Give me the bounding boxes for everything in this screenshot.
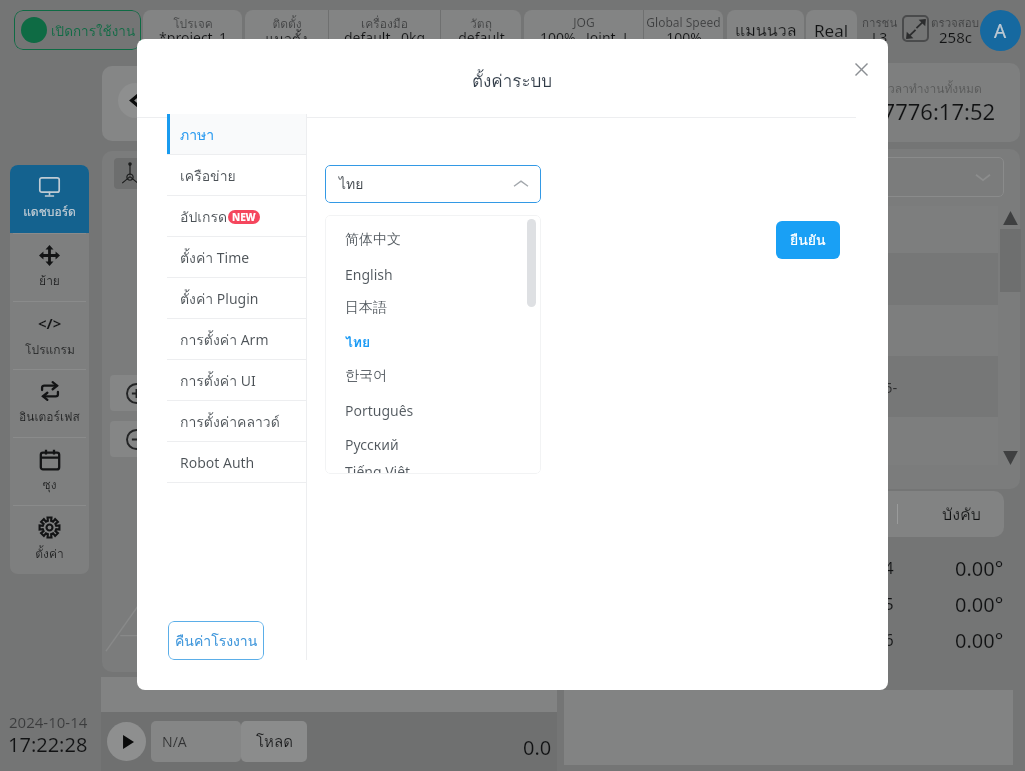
button[interactable]: Account bbox=[980, 10, 1021, 51]
staticText: 4 bbox=[884, 556, 894, 579]
staticText: default bbox=[344, 28, 391, 47]
button[interactable]: แมนนวล bbox=[727, 10, 804, 50]
staticText: N/A bbox=[162, 732, 187, 751]
button[interactable]: JOG bbox=[524, 10, 643, 50]
button[interactable]: Robot view bbox=[114, 158, 145, 189]
button[interactable]: 한국어 bbox=[325, 359, 541, 393]
staticText: 5- bbox=[884, 377, 898, 397]
button[interactable]: Run bbox=[107, 722, 146, 761]
staticText: แดชบอร์ด bbox=[23, 202, 76, 221]
staticText: ภาษา bbox=[180, 124, 215, 146]
staticText: เครือข่าย bbox=[180, 165, 236, 187]
staticText: A bbox=[994, 18, 1007, 44]
staticText: คืนค่าโรงงาน bbox=[175, 630, 258, 652]
staticText: 100% bbox=[666, 28, 702, 47]
button[interactable]: คืนค่าโรงงาน bbox=[168, 621, 264, 660]
staticText: บังคับ bbox=[942, 502, 981, 527]
staticText: 한국어 bbox=[345, 367, 387, 385]
button[interactable]: ย้าย bbox=[10, 233, 89, 301]
button[interactable]: เครื่องมือ bbox=[329, 10, 440, 50]
button[interactable]: Zoom in bbox=[110, 375, 146, 411]
staticText: ตั้งค่า Plugin bbox=[180, 288, 259, 310]
staticText: ติดตั้ง bbox=[272, 14, 302, 33]
button[interactable]: ซุง bbox=[10, 437, 89, 505]
button[interactable]: ยืนยัน bbox=[776, 221, 840, 259]
button[interactable]: เปิดการใช้งาน bbox=[14, 10, 141, 50]
button[interactable]: โปรเจค bbox=[143, 10, 242, 50]
button[interactable]: </> bbox=[10, 301, 89, 369]
button[interactable]: อินเตอร์เฟส bbox=[10, 369, 89, 437]
staticText: L3 bbox=[872, 28, 888, 47]
staticText: 0.00° bbox=[955, 555, 1004, 582]
staticText: การชน bbox=[862, 14, 898, 32]
button[interactable]: English bbox=[325, 257, 541, 291]
button[interactable]: Close bbox=[846, 54, 876, 84]
staticText: การตั้งค่า Arm bbox=[180, 329, 269, 351]
button[interactable]: 简体中文 bbox=[325, 223, 541, 257]
button[interactable] bbox=[592, 157, 1004, 197]
staticText: ซุง bbox=[42, 475, 57, 494]
staticText: 简体中文 bbox=[345, 231, 401, 249]
staticText: โหลด bbox=[256, 730, 293, 754]
button[interactable]: Zoom out bbox=[110, 421, 146, 457]
staticText: ไทย bbox=[345, 331, 371, 353]
button[interactable]: Full screen bbox=[902, 15, 929, 42]
staticText: 6 bbox=[884, 628, 894, 651]
button[interactable]: ไทย bbox=[325, 165, 541, 203]
button[interactable]: Русский bbox=[325, 427, 541, 461]
staticText: ตั้งค่า bbox=[35, 544, 64, 563]
staticText: 27776:17:52 bbox=[870, 96, 996, 126]
staticText: 258c bbox=[939, 27, 972, 47]
button[interactable]: Back bbox=[102, 66, 177, 141]
staticText: JOG bbox=[573, 14, 595, 30]
staticText: Global Speed bbox=[646, 14, 721, 30]
staticText: default bbox=[458, 28, 505, 47]
staticText: Português bbox=[345, 401, 414, 420]
staticText: ย้าย bbox=[39, 271, 60, 290]
button[interactable]: Global Speed bbox=[644, 10, 723, 50]
button[interactable]: ตรวจสอบ bbox=[928, 10, 982, 50]
staticText: อัปเกรด bbox=[180, 206, 228, 228]
staticText: Robot Auth bbox=[180, 453, 255, 472]
button[interactable]: Português bbox=[325, 393, 541, 427]
staticText: การตั้งค่า UI bbox=[180, 370, 256, 392]
staticText: Real bbox=[814, 19, 849, 42]
button[interactable]: ตั้งค่า Plugin bbox=[167, 278, 307, 319]
staticText: 0.00° bbox=[955, 627, 1004, 654]
button[interactable]: Tiếng Việt bbox=[325, 461, 541, 474]
button[interactable]: การตั้งค่าคลาวด์ bbox=[167, 401, 307, 442]
button[interactable]: ติดตั้ง bbox=[245, 10, 328, 50]
staticText: การตั้งค่าคลาวด์ bbox=[180, 411, 280, 433]
button[interactable]: อัปเกรด bbox=[167, 196, 307, 237]
staticText: </> bbox=[38, 313, 62, 333]
staticText: โปรแกรม bbox=[25, 340, 75, 359]
staticText: 0kg bbox=[401, 28, 426, 47]
button[interactable]: 日本語 bbox=[325, 291, 541, 325]
staticText: 0.0 bbox=[523, 734, 552, 761]
staticText: ไทย bbox=[339, 173, 364, 195]
button[interactable]: การตั้งค่า UI bbox=[167, 360, 307, 401]
staticText: ตั้งค่า Time bbox=[180, 247, 250, 269]
staticText: 100% bbox=[540, 28, 576, 47]
button[interactable]: เครือข่าย bbox=[167, 155, 307, 196]
button[interactable]: ตั้งค่า bbox=[10, 505, 89, 573]
staticText: เปิดการใช้งาน bbox=[51, 20, 136, 41]
button[interactable]: แดชบอร์ด bbox=[10, 165, 89, 233]
staticText: 日本語 bbox=[345, 299, 387, 317]
button[interactable]: โหลด bbox=[241, 721, 307, 762]
staticText: Tiếng Việt bbox=[345, 462, 411, 474]
staticText: *project_1 bbox=[159, 28, 227, 47]
button[interactable]: Robot Auth bbox=[167, 442, 307, 483]
button[interactable]: การชน bbox=[857, 10, 902, 50]
button[interactable]: วัตถุ bbox=[441, 10, 521, 50]
button[interactable]: Real bbox=[806, 10, 857, 50]
button[interactable]: ไทย bbox=[325, 325, 541, 359]
button[interactable]: ภาษา bbox=[167, 114, 307, 155]
staticText: NEW bbox=[232, 210, 256, 224]
button[interactable]: การตั้งค่า Arm bbox=[167, 319, 307, 360]
staticText: ตรวจสอบ bbox=[931, 14, 980, 32]
button[interactable]: ตั้งค่า Time bbox=[167, 237, 307, 278]
staticText: 2024-10-14 bbox=[9, 712, 88, 732]
staticText: เครื่องมือ bbox=[361, 14, 408, 33]
staticText: English bbox=[345, 265, 393, 284]
